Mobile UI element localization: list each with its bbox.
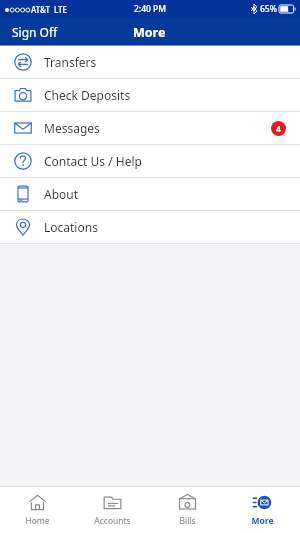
button[interactable]: Accounts [75,487,150,533]
staticText: Messages [44,120,100,136]
button[interactable]: Check Deposits [0,79,300,111]
button[interactable]: More [225,487,300,533]
staticText: Transfers [44,54,97,70]
staticText: Accounts [94,515,131,527]
staticText: Locations [44,219,98,235]
button[interactable]: Locations [0,211,300,243]
staticText: Contact Us / Help [44,153,142,169]
button[interactable]: Bills [150,487,225,533]
staticText: More [133,24,166,41]
button[interactable]: Sign Off [0,18,70,46]
staticText: Home [25,515,50,527]
button[interactable]: Home [0,487,75,533]
staticText: Bills [179,515,196,527]
staticText: 65% [260,3,277,15]
staticText: 4 [276,123,281,135]
staticText: More [251,515,274,527]
button[interactable]: About [0,178,300,210]
button[interactable]: Contact Us / Help [0,145,300,177]
staticText: About [44,186,79,202]
button[interactable]: Transfers [0,46,300,78]
staticText: AT&T [31,4,50,15]
staticText: Sign Off [12,24,58,40]
staticText: 2:40 PM [134,3,167,15]
staticText: LTE [54,4,68,15]
staticText: Check Deposits [44,87,131,103]
button[interactable]: Messages [0,112,300,144]
